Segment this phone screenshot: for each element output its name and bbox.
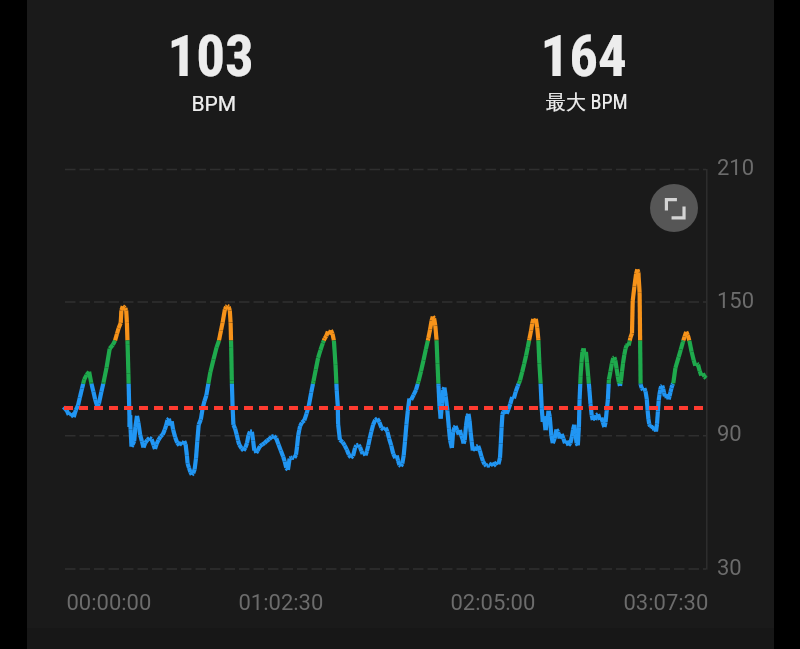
button[interactable]: Expand chart bbox=[650, 184, 698, 232]
